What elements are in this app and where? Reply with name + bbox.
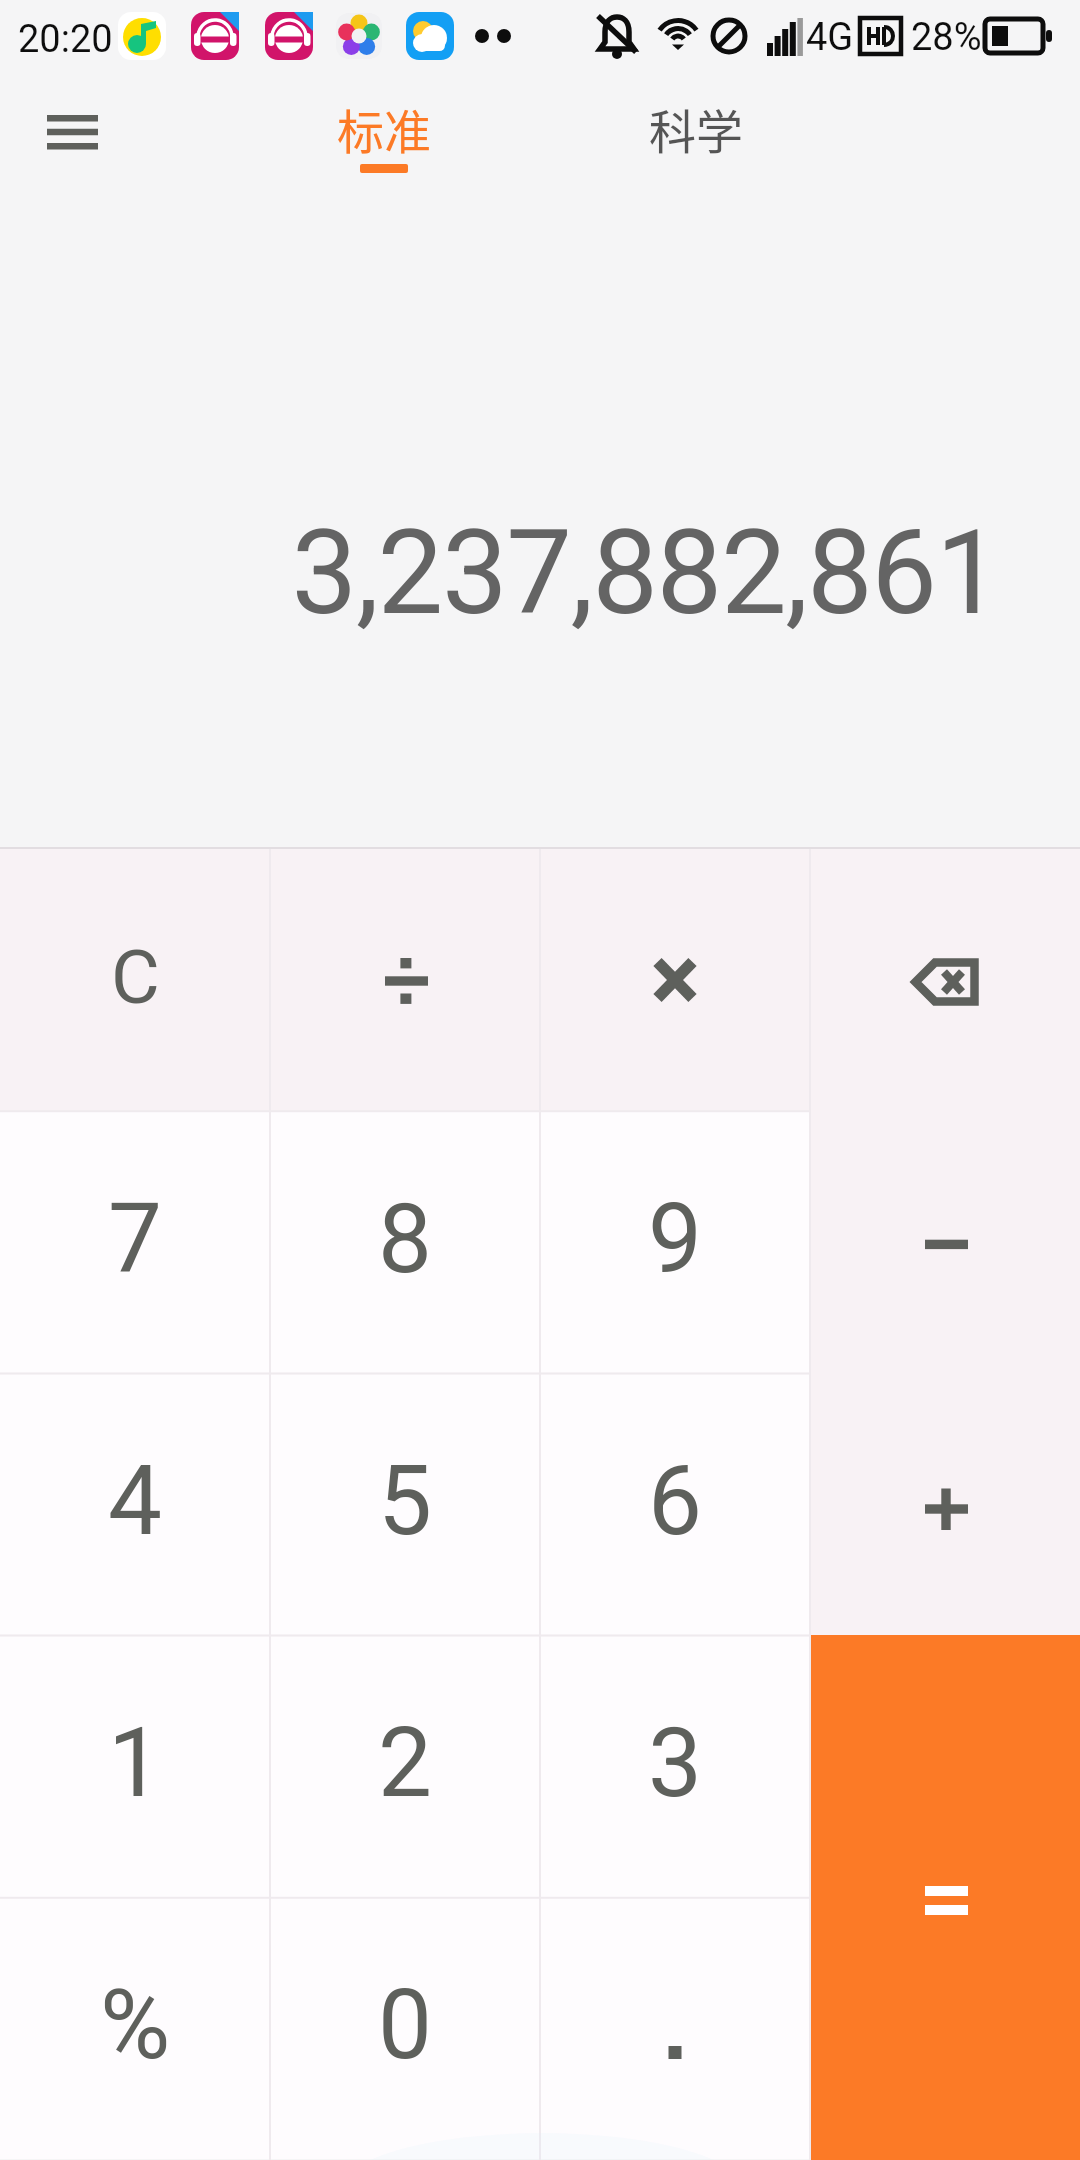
staticText: 科学 (649, 94, 743, 162)
button[interactable]: C (0, 849, 270, 1111)
button[interactable]: Minus (810, 1111, 1080, 1373)
staticText: 7 (108, 1183, 162, 1296)
staticText: 28% (911, 15, 982, 60)
button[interactable]: 7 (0, 1111, 270, 1373)
button[interactable]: Menu (27, 97, 117, 167)
button[interactable]: 9 (540, 1111, 810, 1373)
button[interactable]: 科学 (596, 86, 796, 196)
button[interactable]: Decimal point (540, 1897, 810, 2159)
staticText: 9 (648, 1183, 702, 1296)
staticText: % (100, 1969, 171, 2082)
staticText: 1 (108, 1707, 162, 1820)
button[interactable]: Multiply (540, 849, 810, 1111)
button[interactable]: % (0, 1897, 270, 2159)
button[interactable]: Equals (811, 1637, 1080, 2160)
button[interactable]: 0 (270, 1897, 540, 2159)
staticText: 4G (806, 15, 854, 60)
staticText: 5 (378, 1445, 432, 1558)
staticText: 3,237,882,861 (291, 504, 1000, 641)
button[interactable]: 3 (540, 1635, 810, 1897)
button[interactable]: Plus (810, 1373, 1080, 1635)
button[interactable]: 5 (270, 1373, 540, 1635)
staticText: 0 (378, 1969, 432, 2082)
staticText: 4 (108, 1445, 162, 1558)
staticText: 6 (648, 1445, 702, 1558)
button[interactable]: 1 (0, 1635, 270, 1897)
button[interactable]: 4 (0, 1373, 270, 1635)
staticText: 标准 (337, 94, 431, 162)
staticText: C (111, 933, 160, 1021)
button[interactable]: Backspace (810, 849, 1080, 1111)
staticText: 8 (378, 1183, 432, 1296)
staticText: 20:20 (18, 17, 113, 62)
staticText: 2 (378, 1707, 432, 1820)
button[interactable]: 6 (540, 1373, 810, 1635)
staticText: 3 (648, 1707, 702, 1820)
button[interactable]: 2 (270, 1635, 540, 1897)
button[interactable]: Divide (270, 849, 540, 1111)
button[interactable]: 8 (270, 1111, 540, 1373)
button[interactable]: 标准 (284, 86, 484, 196)
